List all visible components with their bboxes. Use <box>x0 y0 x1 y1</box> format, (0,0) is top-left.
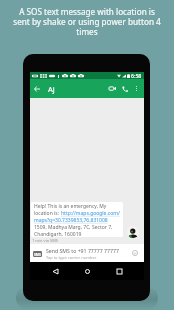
staticText: 1509, Madhya Marg, 7C, Sector 7, <box>34 224 113 231</box>
button[interactable]: SMS <box>30 244 144 262</box>
staticText: Send SMS to +91 77777 77777 <box>46 247 119 254</box>
button[interactable]: More options <box>131 79 141 98</box>
staticText: 6:58 <box>131 72 142 79</box>
button[interactable]: Back <box>48 264 62 278</box>
staticText: maps?q=30.7339853,76.831008 <box>34 217 108 224</box>
staticText: Help! This is an emergency, My <box>34 203 107 210</box>
button[interactable]: Recent apps <box>112 264 126 278</box>
staticText: SMS <box>34 252 41 257</box>
button[interactable]: Home <box>80 264 94 278</box>
button[interactable]: Call <box>119 79 131 98</box>
button[interactable]: Video call <box>106 79 119 98</box>
button[interactable]: Help! This is an emergency, My <box>31 202 123 237</box>
staticText: A SOS text message with location is sent… <box>0 6 174 37</box>
staticText: Chandigarh, 160019 <box>34 231 82 237</box>
staticText: 1 min via SMS <box>32 238 58 243</box>
staticText: location is: <box>34 210 61 217</box>
staticText: http://maps.google.com/ <box>61 210 120 217</box>
staticText: Tap to type carrier number <box>46 255 97 260</box>
button[interactable]: Back <box>30 79 43 98</box>
button[interactable]: Emoji <box>131 249 139 257</box>
staticText: Aj <box>48 84 55 94</box>
